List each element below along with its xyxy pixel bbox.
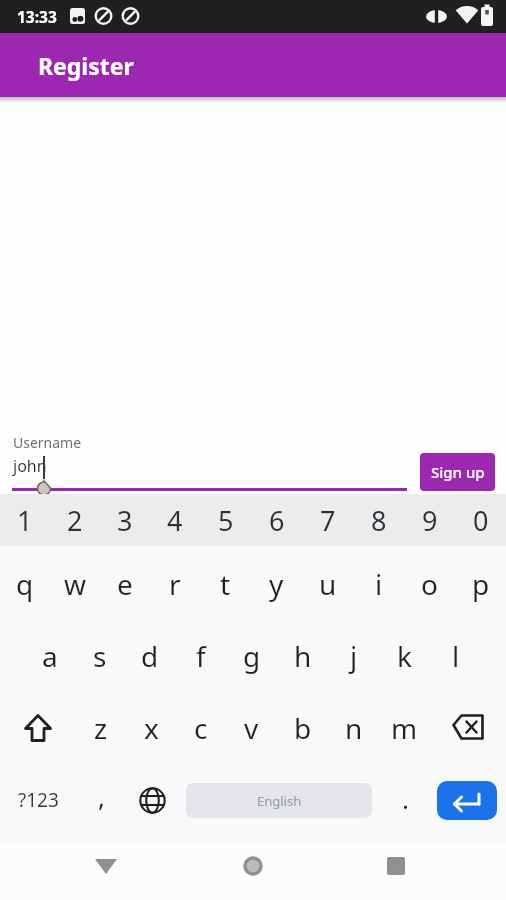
staticText: b — [294, 709, 312, 747]
staticText: k — [397, 637, 412, 675]
staticText: u — [319, 565, 337, 603]
staticText: z — [94, 709, 108, 747]
staticText: Username — [13, 433, 82, 452]
staticText: m — [391, 709, 418, 747]
staticText: v — [244, 709, 259, 747]
staticText: j — [350, 637, 358, 675]
staticText: 8 — [371, 502, 387, 539]
staticText: English — [257, 792, 302, 810]
staticText: l — [452, 637, 460, 675]
staticText: p — [472, 565, 490, 603]
staticText: i — [375, 565, 383, 603]
staticText: 5 — [218, 502, 234, 539]
staticText: x — [144, 709, 159, 747]
staticText: 6 — [269, 502, 285, 539]
staticText: f — [196, 637, 206, 675]
staticText: w — [64, 565, 87, 603]
staticText: s — [93, 637, 107, 675]
staticText: john — [13, 455, 47, 477]
staticText: a — [42, 637, 58, 675]
staticText: 4 — [167, 502, 183, 539]
staticText: c — [194, 709, 208, 747]
staticText: e — [117, 565, 133, 603]
staticText: . — [402, 781, 409, 816]
staticText: 3 — [117, 502, 133, 539]
staticText: 9 — [422, 502, 438, 539]
staticText: d — [141, 637, 159, 675]
staticText: Register — [38, 50, 134, 81]
staticText: 2 — [67, 502, 83, 539]
staticText: , — [98, 779, 105, 814]
staticText: o — [421, 565, 438, 603]
staticText: y — [269, 565, 284, 603]
staticText: n — [345, 709, 363, 747]
staticText: Sign up — [431, 462, 485, 482]
staticText: g — [243, 637, 261, 675]
staticText: r — [169, 565, 181, 603]
staticText: 7 — [320, 502, 336, 539]
staticText: q — [16, 565, 34, 603]
staticText: ?123 — [18, 787, 59, 813]
staticText: 13:33 — [17, 6, 57, 27]
staticText: t — [220, 565, 231, 603]
staticText: h — [294, 637, 312, 675]
staticText: 0 — [473, 502, 489, 539]
staticText: 1 — [17, 502, 33, 539]
